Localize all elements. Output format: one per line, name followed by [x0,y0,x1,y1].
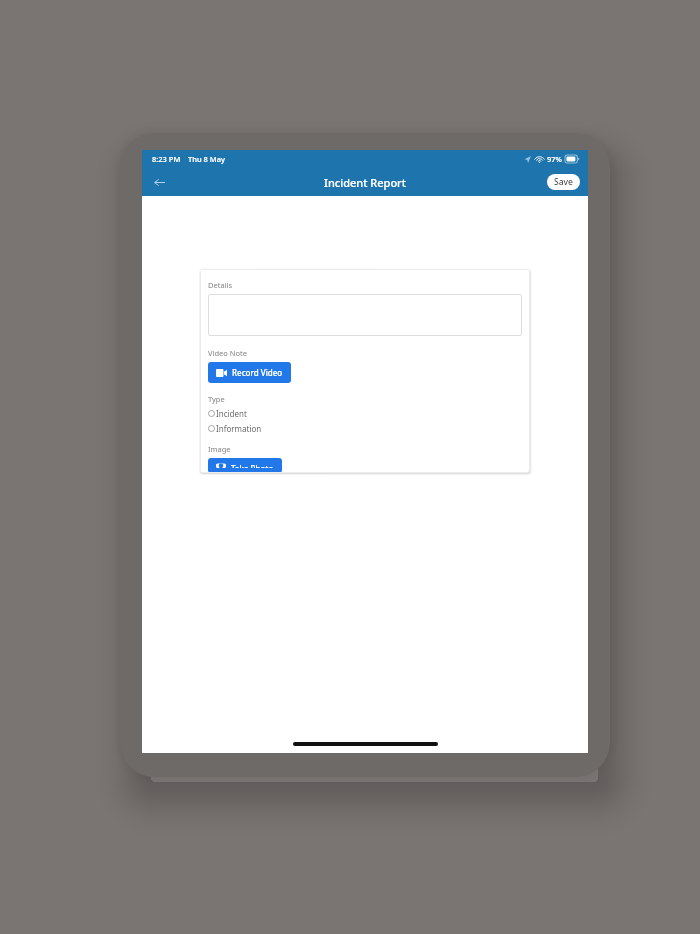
staticText: Incident [216,408,247,419]
staticText: 8:23 PM [152,154,181,164]
button[interactable]: Information [208,423,262,434]
button[interactable]: Take Photo [208,458,282,473]
button[interactable]: Save [547,174,580,190]
staticText: Type [208,394,225,404]
button[interactable]: Record Video [208,362,291,383]
staticText: Information [216,423,262,434]
staticText: Save [554,176,573,188]
staticText: Record Video [232,367,283,378]
staticText: Details [208,280,233,290]
button[interactable] [208,294,522,336]
staticText: 97% [547,154,562,164]
staticText: Incident Report [324,175,406,190]
staticText: Thu 8 May [188,154,225,164]
staticText: Take Photo [231,463,274,468]
staticText: Video Note [208,348,247,358]
button[interactable]: Back [149,172,169,192]
button[interactable]: Incident [208,408,247,419]
staticText: Image [208,444,231,454]
